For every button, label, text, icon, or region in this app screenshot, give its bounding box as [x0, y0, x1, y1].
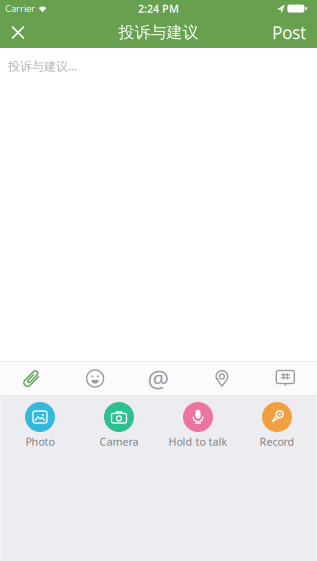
button[interactable]: Mention	[127, 362, 190, 395]
staticText: 投诉与建议	[118, 23, 198, 42]
staticText: 2:24 PM	[138, 1, 179, 16]
button[interactable]: Record	[237, 402, 316, 449]
button[interactable]: Post	[272, 21, 317, 44]
button[interactable]: Camera	[79, 402, 158, 449]
staticText: Hold to talk	[168, 434, 227, 449]
button[interactable]: Location	[190, 362, 254, 395]
button[interactable]: Photo	[0, 402, 79, 449]
button[interactable]: Emoji	[63, 362, 127, 395]
staticText: Record	[259, 434, 294, 449]
staticText: Post	[272, 21, 306, 44]
staticText: 投诉与建议...	[8, 58, 77, 74]
button[interactable]: Close	[0, 17, 36, 48]
staticText: @	[147, 363, 169, 394]
staticText: Photo	[25, 434, 54, 449]
staticText: Carrier	[5, 2, 35, 15]
button[interactable]: Name card	[254, 362, 317, 395]
button[interactable]: Hold to talk	[158, 402, 237, 449]
staticText: Camera	[99, 434, 138, 449]
button[interactable]: Attach file	[0, 362, 63, 395]
